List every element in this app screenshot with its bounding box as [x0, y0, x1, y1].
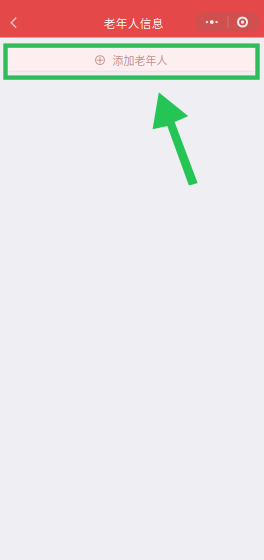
staticText: 添加老年人 [112, 52, 167, 68]
button[interactable]: 返回 [0, 8, 29, 38]
button[interactable]: 添加老年人 [8, 48, 254, 72]
staticText: 老年人信息 [104, 14, 164, 31]
button[interactable]: 更多 [192, 9, 262, 35]
